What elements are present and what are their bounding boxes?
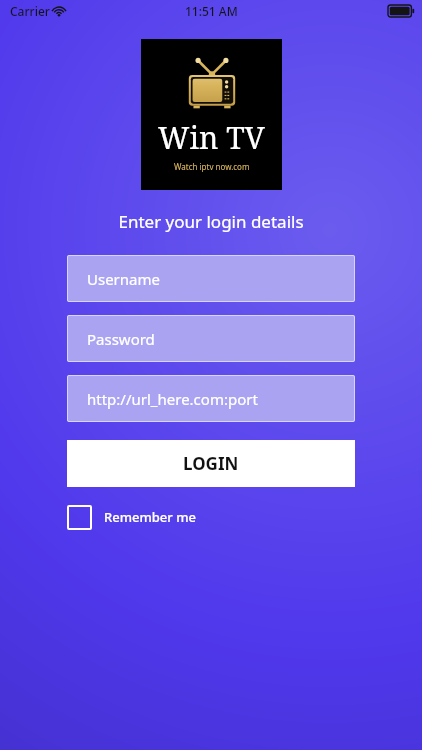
staticText: Watch iptv now.com	[174, 161, 250, 172]
button[interactable]: LOGIN	[67, 440, 355, 487]
staticText: Password	[87, 329, 155, 349]
staticText: Enter your login details	[0, 210, 422, 233]
button[interactable]: Password	[67, 315, 355, 362]
staticText: Carrier	[10, 3, 50, 19]
button[interactable]: Username	[67, 255, 355, 302]
staticText: LOGIN	[183, 452, 239, 475]
button[interactable]: http://url_here.com:port	[67, 375, 355, 422]
staticText: Remember me	[104, 508, 196, 526]
staticText: http://url_here.com:port	[87, 389, 258, 409]
staticText: Win TV	[158, 117, 265, 158]
staticText: Username	[87, 269, 160, 289]
button[interactable]: Remember me	[67, 499, 196, 535]
staticText: 11:51 AM	[185, 3, 238, 19]
